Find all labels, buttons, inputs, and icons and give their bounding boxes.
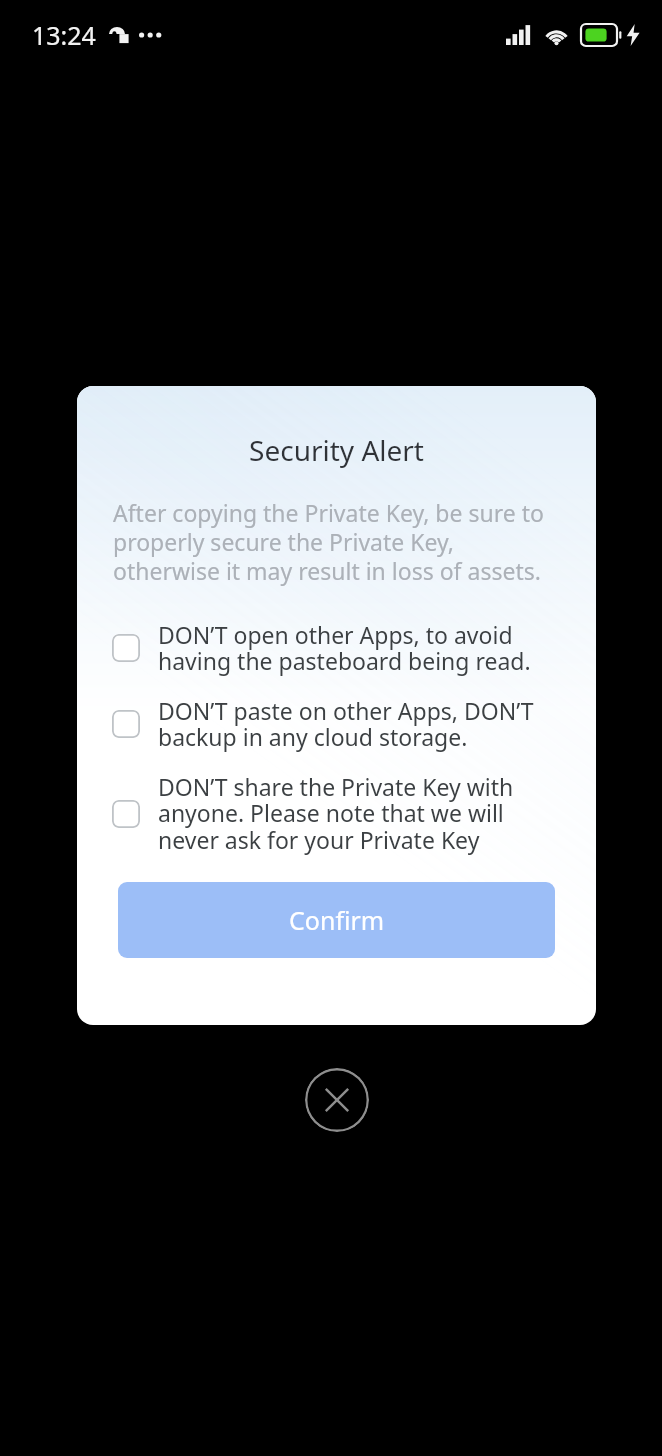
button[interactable]: DON’T open other Apps, to avoid having t… <box>77 619 596 677</box>
button[interactable]: Close <box>305 1068 369 1132</box>
button[interactable]: DON’T share the Private Key with anyone.… <box>77 771 596 856</box>
staticText: 13:24 <box>32 18 96 52</box>
staticText: After copying the Private Key, be sure t… <box>113 497 566 587</box>
button[interactable]: Confirm <box>118 882 555 958</box>
staticText: Security Alert <box>77 431 596 469</box>
button[interactable]: DON’T paste on other Apps, DON’T backup … <box>77 695 596 753</box>
staticText: DON’T paste on other Apps, DON’T backup … <box>158 695 570 753</box>
staticText: Confirm <box>289 903 385 937</box>
staticText: DON’T share the Private Key with anyone.… <box>158 771 570 856</box>
staticText: DON’T open other Apps, to avoid having t… <box>158 619 570 677</box>
